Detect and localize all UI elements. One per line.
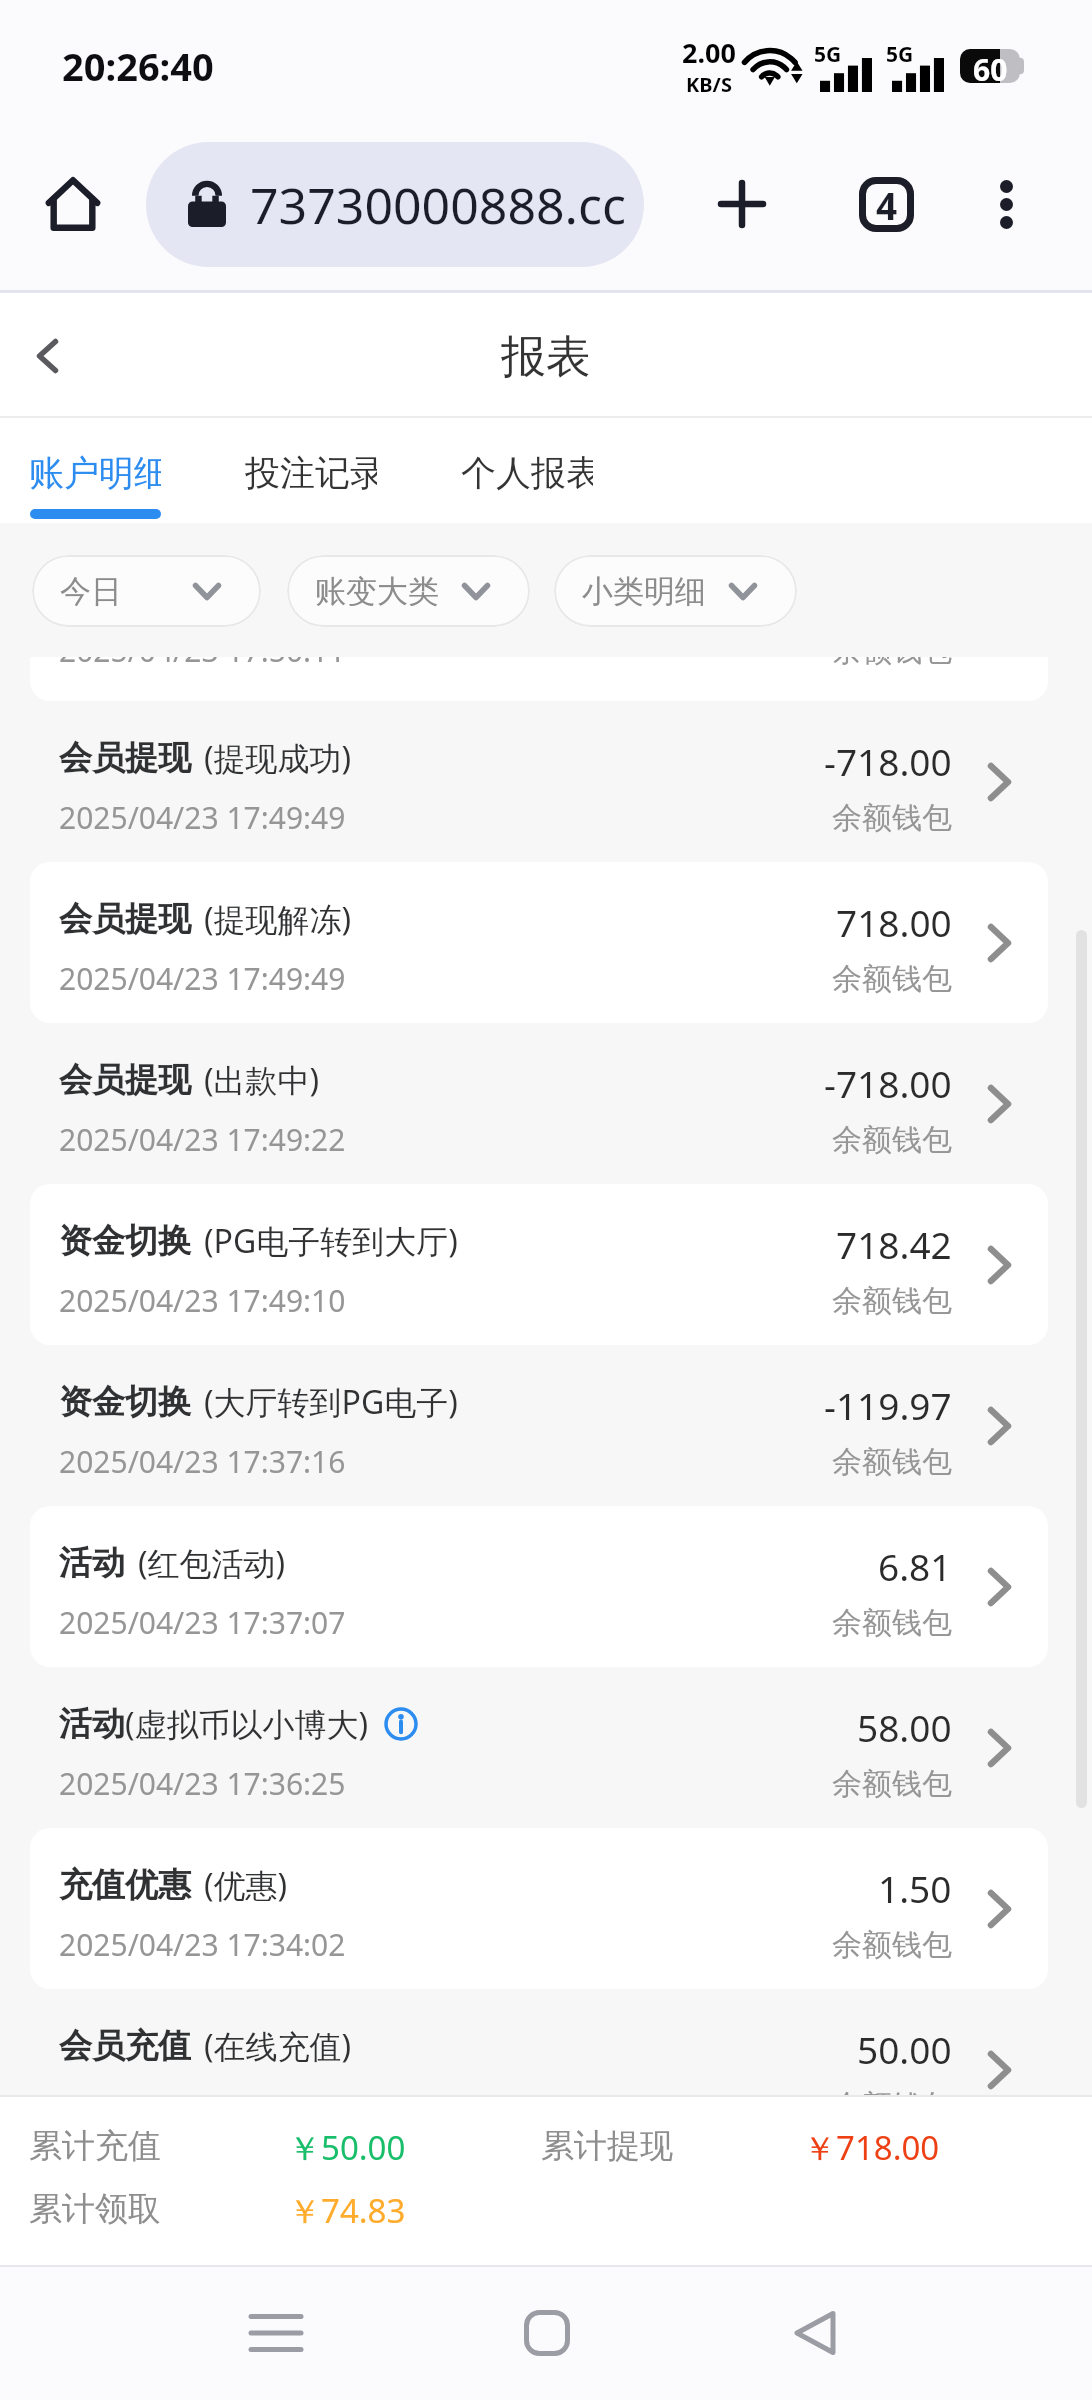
- staticText: 2025/04/23 17:37:07: [59, 1602, 346, 1643]
- button[interactable]: Home: [471, 2265, 623, 2400]
- staticText: 2025/04/23 17:36:25: [59, 1763, 346, 1804]
- staticText: 余额钱包: [832, 632, 952, 670]
- staticText: 2.00: [682, 34, 736, 71]
- button[interactable]: 会员提现: [0, 701, 1092, 862]
- staticText: 报表: [501, 329, 591, 386]
- staticText: -119.97: [824, 1380, 952, 1430]
- button[interactable]: 活动: [0, 1667, 1092, 1828]
- staticText: 余额钱包: [832, 799, 952, 837]
- staticText: 58.00: [857, 1702, 952, 1752]
- staticText: 2025/04/23 17:49:22: [59, 1119, 346, 1160]
- staticText: (出款中): [204, 1058, 320, 1102]
- staticText: ￥50.00: [288, 2125, 406, 2170]
- staticText: 718.42: [836, 1219, 952, 1269]
- button[interactable]: 账变大类: [287, 555, 530, 627]
- button[interactable]: 账户明细: [29, 418, 161, 523]
- button[interactable]: 会员提现: [0, 862, 1092, 1023]
- button[interactable]: 会员提现: [0, 1023, 1092, 1184]
- staticText: 充值优惠: [59, 1864, 191, 1906]
- staticText: 2025/04/23 17:49:49: [59, 958, 346, 999]
- staticText: 资金切换: [59, 1381, 191, 1423]
- staticText: KB/S: [686, 71, 732, 98]
- staticText: 4: [876, 180, 898, 230]
- staticText: (提现解冻): [204, 897, 352, 941]
- staticText: 1.50: [878, 1863, 952, 1913]
- staticText: 2025/04/23 17:49:10: [59, 1280, 346, 1321]
- staticText: 2025/04/23 17:50:11: [59, 630, 346, 671]
- staticText: 账变大类: [315, 572, 439, 611]
- staticText: 会员提现: [59, 1059, 191, 1101]
- staticText: 会员提现: [59, 737, 191, 779]
- button[interactable]: 今日: [32, 555, 261, 627]
- staticText: 累计领取: [29, 2188, 161, 2230]
- staticText: 余额钱包: [832, 1765, 952, 1803]
- staticText: 余额钱包: [832, 960, 952, 998]
- staticText: (提现成功): [204, 736, 352, 780]
- button[interactable]: 73730000888.cc: [146, 142, 644, 267]
- staticText: 余额钱包: [832, 1443, 952, 1481]
- staticText: (PG电子转到大厅): [204, 1219, 458, 1263]
- button[interactable]: 会员充值: [0, 1989, 1092, 2095]
- staticText: 2025/04/23 17:34:02: [59, 1924, 346, 1965]
- button[interactable]: 小类明细: [554, 555, 797, 627]
- button[interactable]: Back: [739, 2265, 891, 2400]
- button[interactable]: New tab: [696, 158, 788, 250]
- staticText: 资金切换: [59, 1220, 191, 1262]
- staticText: 60: [973, 49, 1008, 83]
- staticText: ￥74.83: [288, 2188, 406, 2233]
- staticText: 累计充值: [29, 2125, 161, 2167]
- staticText: 会员充值: [59, 2025, 191, 2067]
- staticText: 73730000888.cc: [250, 171, 626, 239]
- staticText: (虚拟币以小博大): [125, 1702, 369, 1746]
- staticText: 718.00: [836, 897, 952, 947]
- staticText: 活动: [59, 1703, 125, 1745]
- staticText: 余额钱包: [832, 2087, 952, 2095]
- staticText: ￥718.00: [803, 2125, 940, 2170]
- staticText: 5G: [886, 40, 914, 69]
- button[interactable]: Recent apps: [200, 2265, 352, 2400]
- button[interactable]: Back: [1, 310, 93, 402]
- button[interactable]: Tabs, 4 open: [840, 158, 932, 250]
- staticText: 余额钱包: [832, 1121, 952, 1159]
- staticText: (在线充值): [204, 2024, 352, 2068]
- staticText: 余额钱包: [832, 1282, 952, 1320]
- staticText: 50.00: [857, 2024, 952, 2074]
- button[interactable]: Home page: [26, 157, 120, 251]
- staticText: (大厅转到PG电子): [204, 1380, 458, 1424]
- staticText: 今日: [60, 572, 122, 611]
- button[interactable]: 投注记录: [245, 418, 377, 523]
- staticText: 余额钱包: [832, 1604, 952, 1642]
- button[interactable]: 资金切换: [0, 1345, 1092, 1506]
- staticText: (优惠): [204, 1863, 288, 1907]
- button[interactable]: 活动: [0, 1506, 1092, 1667]
- staticText: 活动: [59, 1542, 125, 1584]
- button[interactable]: 资金切换: [0, 1184, 1092, 1345]
- button[interactable]: More options: [962, 160, 1050, 248]
- staticText: -718.00: [824, 736, 952, 786]
- staticText: -718.00: [824, 1058, 952, 1108]
- staticText: 会员提现: [59, 898, 191, 940]
- staticText: 投注记录: [245, 451, 377, 495]
- button[interactable]: 充值优惠: [0, 1828, 1092, 1989]
- staticText: 个人报表: [461, 451, 593, 495]
- staticText: 2025/04/23 17:49:49: [59, 797, 346, 838]
- button[interactable]: 个人报表: [461, 418, 593, 523]
- staticText: 20:26:40: [62, 40, 214, 92]
- staticText: 余额钱包: [832, 1926, 952, 1964]
- staticText: 5G: [814, 40, 842, 69]
- staticText: 账户明细: [29, 451, 161, 495]
- staticText: 6.81: [878, 1541, 952, 1591]
- staticText: (红包活动): [138, 1541, 286, 1585]
- staticText: 累计提现: [541, 2125, 673, 2167]
- staticText: 2025/04/23 17:37:16: [59, 1441, 346, 1482]
- staticText: 小类明细: [582, 572, 706, 611]
